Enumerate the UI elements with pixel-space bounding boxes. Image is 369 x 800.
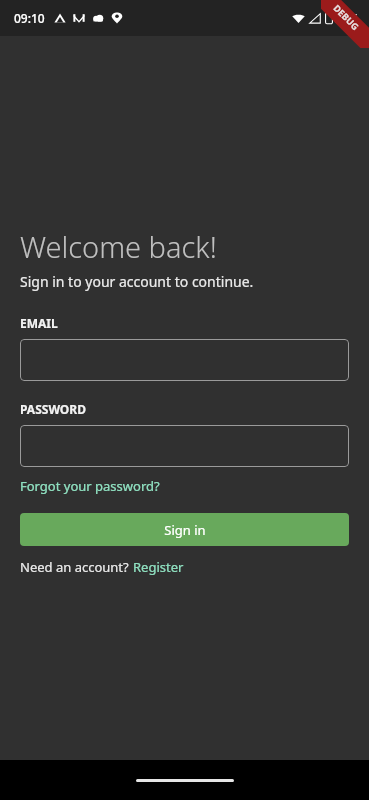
button[interactable]: Sign in bbox=[20, 513, 349, 546]
staticText: 28% bbox=[335, 10, 359, 26]
staticText: Welcome back! bbox=[20, 227, 217, 266]
button[interactable] bbox=[20, 339, 349, 381]
staticText: Register bbox=[133, 558, 184, 576]
staticText: PASSWORD bbox=[20, 401, 87, 417]
button[interactable] bbox=[20, 425, 349, 467]
staticText: EMAIL bbox=[20, 315, 58, 331]
staticText: Sign in bbox=[164, 521, 206, 539]
staticText: DEBUG bbox=[331, 2, 362, 32]
staticText: 09:10 bbox=[14, 10, 45, 26]
staticText: Need an account? bbox=[20, 558, 133, 576]
button[interactable]: Forgot your password? bbox=[20, 477, 160, 495]
button[interactable]: Register bbox=[133, 558, 184, 576]
staticText: Forgot your password? bbox=[20, 477, 160, 495]
staticText: Sign in to your account to continue. bbox=[20, 272, 254, 291]
